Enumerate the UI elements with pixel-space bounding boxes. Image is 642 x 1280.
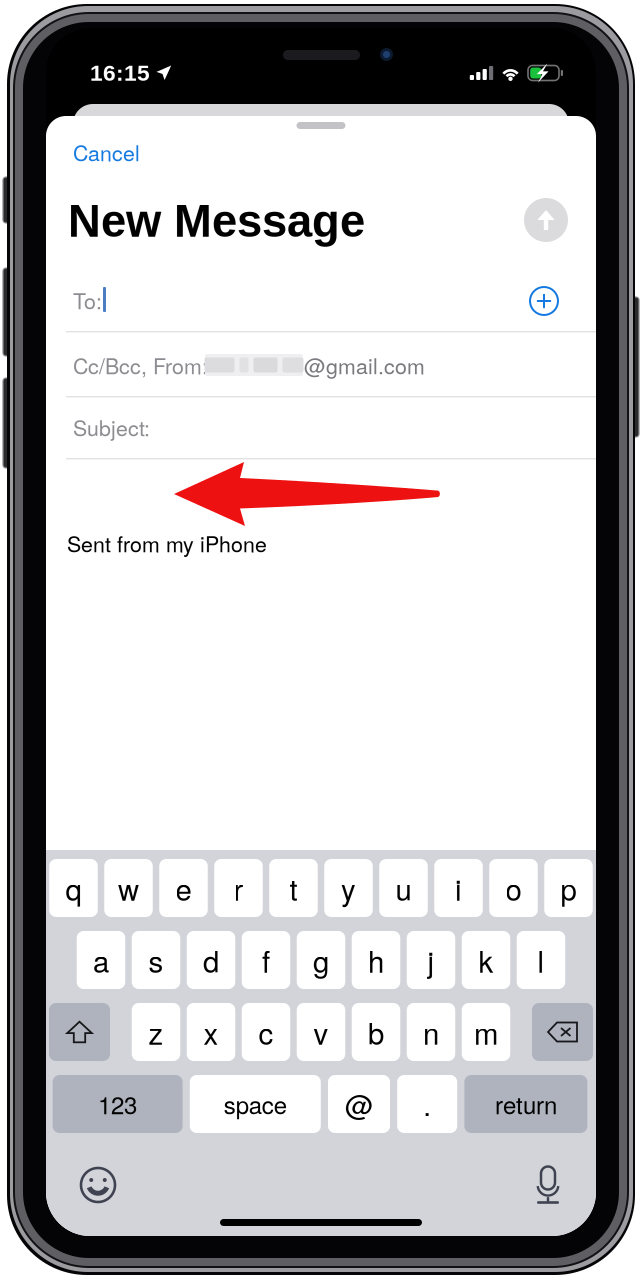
staticText: u bbox=[395, 867, 411, 909]
button[interactable]: @ bbox=[328, 1075, 390, 1133]
staticText: Cancel bbox=[73, 137, 140, 167]
staticText: x bbox=[203, 1011, 218, 1053]
staticText: b bbox=[368, 1011, 384, 1053]
staticText: y bbox=[341, 867, 356, 909]
staticText: To: bbox=[73, 285, 102, 315]
staticText: e bbox=[175, 867, 191, 909]
staticText: @gmail.com bbox=[304, 350, 425, 380]
button[interactable]: a bbox=[77, 931, 125, 989]
button[interactable]: Dictate bbox=[531, 1164, 565, 1206]
staticText: s bbox=[148, 939, 163, 981]
button[interactable]: . bbox=[397, 1075, 457, 1133]
button[interactable]: k bbox=[462, 931, 510, 989]
button[interactable]: r bbox=[214, 859, 263, 917]
staticText: 123 bbox=[98, 1087, 137, 1121]
staticText: Cc/Bcc, From: bbox=[73, 350, 208, 380]
button[interactable]: Delete bbox=[532, 1003, 593, 1061]
button[interactable]: Add recipient bbox=[530, 287, 558, 315]
staticText: c bbox=[258, 1011, 273, 1053]
staticText: z bbox=[148, 1011, 163, 1053]
staticText: Subject: bbox=[73, 412, 150, 442]
button[interactable]: l bbox=[517, 931, 565, 989]
button[interactable]: p bbox=[544, 859, 593, 917]
button[interactable]: w bbox=[104, 859, 153, 917]
button[interactable]: x bbox=[187, 1003, 235, 1061]
button[interactable]: Cancel bbox=[73, 134, 153, 170]
staticText: . bbox=[423, 1084, 431, 1124]
button[interactable]: i bbox=[434, 859, 483, 917]
staticText: g bbox=[313, 939, 329, 981]
button[interactable]: Shift bbox=[49, 1003, 110, 1061]
staticText: p bbox=[560, 867, 576, 909]
button[interactable]: q bbox=[49, 859, 98, 917]
button[interactable]: f bbox=[242, 931, 290, 989]
button[interactable]: c bbox=[242, 1003, 290, 1061]
button[interactable]: y bbox=[324, 859, 373, 917]
staticText: f bbox=[262, 939, 270, 981]
staticText: h bbox=[368, 939, 384, 981]
button[interactable]: v bbox=[297, 1003, 345, 1061]
button[interactable]: m bbox=[462, 1003, 510, 1061]
staticText: o bbox=[505, 867, 521, 909]
button[interactable]: b bbox=[352, 1003, 400, 1061]
staticText: a bbox=[93, 939, 109, 981]
button[interactable]: z bbox=[132, 1003, 180, 1061]
button[interactable]: g bbox=[297, 931, 345, 989]
button[interactable]: n bbox=[407, 1003, 455, 1061]
button[interactable]: Send bbox=[524, 198, 568, 242]
staticText: q bbox=[65, 867, 81, 909]
staticText: j bbox=[427, 939, 434, 981]
button[interactable]: Emoji keyboard bbox=[77, 1164, 119, 1206]
button[interactable]: 123 bbox=[53, 1075, 183, 1133]
staticText: i bbox=[455, 867, 462, 909]
button[interactable]: space bbox=[190, 1075, 321, 1133]
staticText: w bbox=[118, 867, 139, 909]
staticText: n bbox=[423, 1011, 439, 1053]
staticText: 16:15 bbox=[90, 60, 150, 86]
staticText: l bbox=[537, 939, 544, 981]
button[interactable]: return bbox=[464, 1075, 587, 1133]
staticText: t bbox=[289, 867, 297, 909]
staticText: @ bbox=[345, 1084, 373, 1124]
button[interactable]: d bbox=[187, 931, 235, 989]
button[interactable]: h bbox=[352, 931, 400, 989]
staticText: r bbox=[233, 867, 243, 909]
button[interactable]: t bbox=[269, 859, 318, 917]
staticText: Sent from my iPhone bbox=[67, 528, 267, 558]
button[interactable]: o bbox=[489, 859, 538, 917]
staticText: k bbox=[478, 939, 493, 981]
staticText: m bbox=[474, 1011, 498, 1053]
staticText: v bbox=[313, 1011, 328, 1053]
staticText: New Message bbox=[68, 196, 365, 246]
staticText: d bbox=[203, 939, 219, 981]
staticText: space bbox=[224, 1087, 287, 1121]
staticText: return bbox=[495, 1087, 557, 1121]
button[interactable]: u bbox=[379, 859, 428, 917]
button[interactable]: s bbox=[132, 931, 180, 989]
button[interactable]: j bbox=[407, 931, 455, 989]
button[interactable]: e bbox=[159, 859, 208, 917]
